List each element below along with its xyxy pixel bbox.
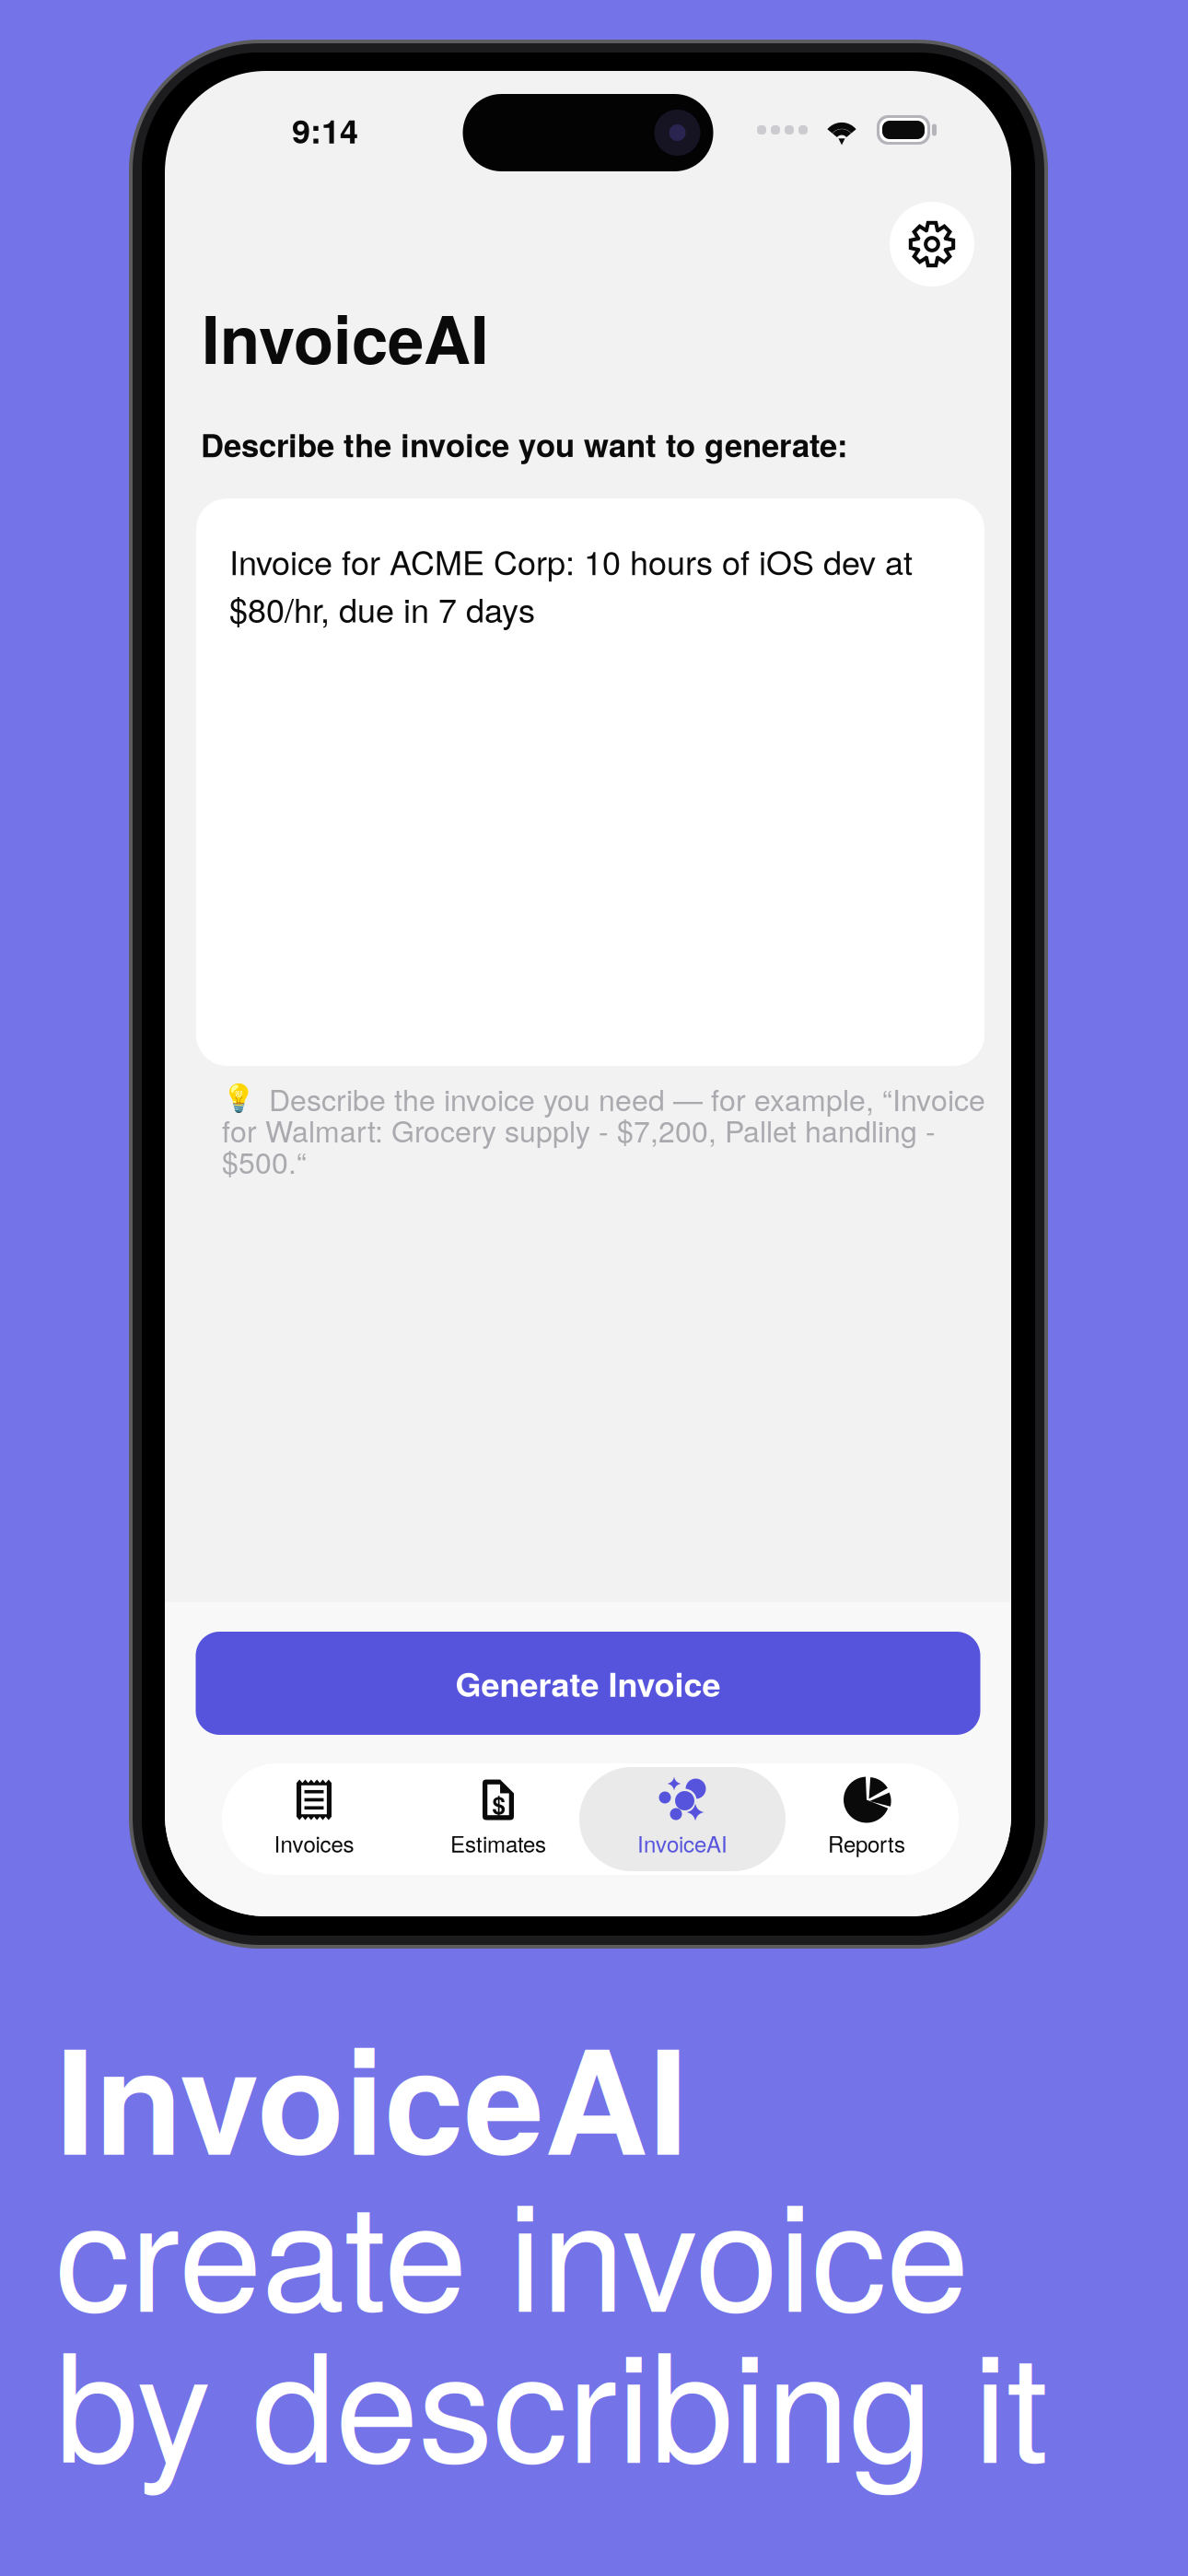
button[interactable]: $ (406, 1763, 590, 1875)
staticText: 9:14 (292, 106, 358, 154)
staticText: Describe the invoice you need — for exam… (269, 1077, 985, 1119)
staticText: $ (492, 1788, 505, 1822)
staticText: 💡 (222, 1082, 256, 1114)
staticText: InvoiceAI (202, 291, 489, 384)
staticText: $500.“ (222, 1140, 307, 1182)
button[interactable]: InvoiceAI (590, 1763, 775, 1875)
staticText: for Walmart: Grocery supply - $7,200, Pa… (222, 1109, 936, 1151)
staticText: Invoices (274, 1827, 354, 1859)
staticText: Invoice for ACME Corp: 10 hours of iOS d… (229, 537, 913, 632)
button[interactable]: Generate Invoice (196, 1632, 980, 1735)
button[interactable]: Invoices (222, 1763, 406, 1875)
staticText: InvoiceAI (637, 1827, 728, 1859)
staticText: InvoiceAI (55, 1993, 688, 2199)
staticText: Estimates (450, 1827, 546, 1859)
staticText: Generate Invoice (455, 1659, 721, 1707)
staticText: Reports (828, 1827, 905, 1859)
staticText: create invoice (55, 2140, 969, 2354)
button[interactable]: Settings (890, 202, 974, 287)
button[interactable]: Reports (775, 1763, 959, 1875)
staticText: by describing it (55, 2291, 1048, 2505)
staticText: Describe the invoice you want to generat… (201, 421, 848, 467)
